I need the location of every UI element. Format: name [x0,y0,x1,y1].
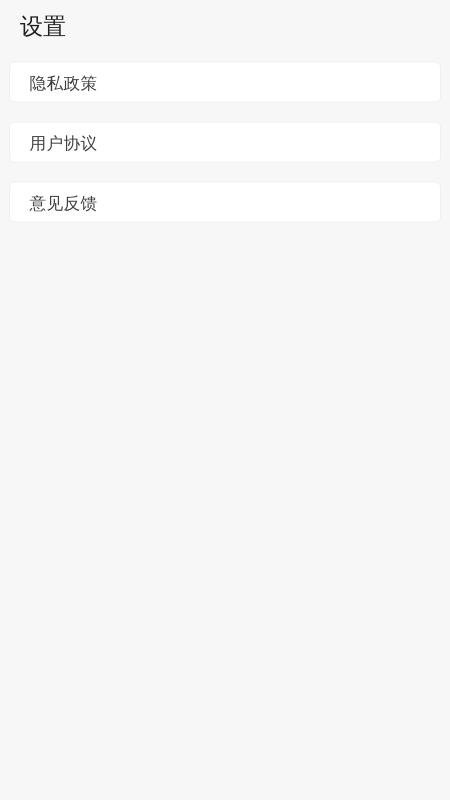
button[interactable]: 用户协议 [9,122,440,162]
staticText: 意见反馈 [29,193,97,214]
button[interactable]: 意见反馈 [9,182,440,222]
staticText: 用户协议 [29,133,97,154]
staticText: 设置 [20,12,66,41]
button[interactable]: 隐私政策 [9,62,440,102]
staticText: 隐私政策 [29,73,97,94]
